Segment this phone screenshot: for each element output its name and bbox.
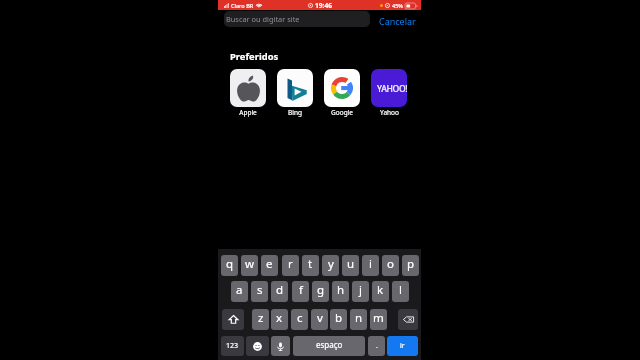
button[interactable]: u [342, 255, 359, 276]
staticText: q [226, 256, 234, 272]
button[interactable]: . [368, 336, 385, 356]
button[interactable]: d [271, 281, 288, 302]
staticText: Apple [239, 108, 257, 117]
button[interactable]: v [311, 309, 328, 330]
staticText: Yahoo [380, 108, 399, 117]
button[interactable]: espaço [293, 336, 365, 356]
staticText: Google [331, 108, 353, 117]
staticText: m [373, 310, 384, 326]
button[interactable]: c [291, 309, 308, 330]
staticText: v [317, 310, 323, 326]
button[interactable]: t [302, 255, 319, 276]
button[interactable]: Cancelar [379, 13, 416, 29]
staticText: 123 [226, 341, 239, 351]
staticText: p [407, 256, 415, 272]
staticText: r [288, 256, 293, 272]
button[interactable]: e [261, 255, 278, 276]
staticText: k [377, 282, 384, 298]
staticText: o [387, 256, 394, 272]
staticText: i [369, 256, 372, 272]
button[interactable]: Backspace [398, 309, 418, 330]
button[interactable]: k [372, 281, 389, 302]
staticText: Buscar ou digitar site [226, 14, 300, 24]
button[interactable]: q [221, 255, 238, 276]
button[interactable]: Emoji [246, 336, 269, 356]
button[interactable]: l [392, 281, 409, 302]
staticText: n [355, 310, 363, 326]
button[interactable]: Shift [222, 309, 244, 330]
staticText: Cancelar [379, 15, 416, 27]
button[interactable]: Buscar ou digitar site [224, 11, 370, 27]
button[interactable]: b [330, 309, 347, 330]
staticText: b [335, 310, 343, 326]
staticText: w [245, 256, 255, 272]
button[interactable]: Bing [277, 69, 313, 117]
button[interactable]: g [312, 281, 329, 302]
staticText: . [376, 341, 378, 351]
staticText: ir [400, 341, 405, 351]
button[interactable]: f [292, 281, 309, 302]
staticText: y [328, 256, 334, 272]
staticText: YAHOO! [377, 83, 407, 95]
button[interactable]: n [350, 309, 367, 330]
button[interactable]: w [241, 255, 258, 276]
staticText: j [359, 282, 362, 298]
staticText: e [266, 256, 273, 272]
button[interactable]: 123 [221, 336, 244, 356]
button[interactable]: Voice input [271, 336, 290, 356]
button[interactable]: z [252, 309, 269, 330]
button[interactable]: Google [324, 69, 360, 117]
staticText: 45% [392, 2, 403, 9]
button[interactable]: Apple [230, 69, 266, 117]
staticText: s [257, 282, 263, 298]
staticText: z [258, 310, 264, 326]
staticText: Bing [288, 108, 302, 117]
button[interactable]: p [402, 255, 419, 276]
button[interactable]: m [370, 309, 387, 330]
staticText: t [308, 256, 313, 272]
staticText: g [317, 282, 325, 298]
staticText: Preferidos [230, 50, 279, 63]
button[interactable]: j [352, 281, 369, 302]
button[interactable]: i [362, 255, 379, 276]
button[interactable]: a [231, 281, 248, 302]
staticText: 19:46 [315, 1, 332, 10]
button[interactable]: x [271, 309, 288, 330]
staticText: x [276, 310, 283, 326]
button[interactable]: ir [387, 336, 418, 356]
button[interactable]: YAHOO! [371, 69, 407, 117]
staticText: espaço [316, 339, 343, 350]
staticText: h [337, 282, 345, 298]
button[interactable]: y [322, 255, 339, 276]
staticText: Claro BR [231, 2, 254, 9]
staticText: a [236, 282, 243, 298]
button[interactable]: h [332, 281, 349, 302]
staticText: u [347, 256, 355, 272]
staticText: c [297, 310, 303, 326]
staticText: f [299, 282, 303, 298]
button[interactable]: o [382, 255, 399, 276]
button[interactable]: s [251, 281, 268, 302]
button[interactable]: r [282, 255, 299, 276]
staticText: l [399, 282, 402, 298]
staticText: d [276, 282, 284, 298]
